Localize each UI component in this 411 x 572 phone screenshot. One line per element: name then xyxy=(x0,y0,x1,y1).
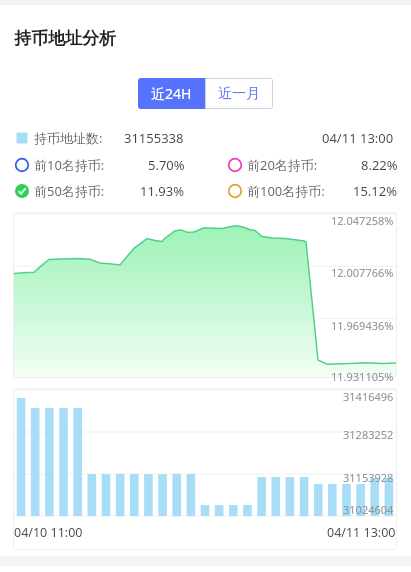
staticText: 持币地址分析 xyxy=(14,28,116,49)
staticText: 31283252 xyxy=(343,427,394,442)
button[interactable]: 前50名持币: xyxy=(14,182,185,199)
staticText: 04/10 11:00 xyxy=(14,524,83,541)
staticText: 04/11 13:00 xyxy=(322,129,394,146)
staticText: 5.70% xyxy=(148,156,185,173)
staticText: 前20名持币: xyxy=(247,156,318,173)
staticText: 12.007766% xyxy=(331,265,394,280)
staticText: 持币地址数: xyxy=(34,129,103,146)
button[interactable]: 前100名持币: xyxy=(227,182,398,199)
staticText: 31153928 xyxy=(343,470,394,485)
button[interactable]: 前10名持币: xyxy=(14,156,185,173)
staticText: 12.047258% xyxy=(331,213,394,228)
staticText: 近24H xyxy=(151,84,192,103)
staticText: 8.22% xyxy=(361,156,398,173)
staticText: 11.93% xyxy=(140,182,185,199)
staticText: 11.931105% xyxy=(331,369,394,384)
staticText: 31155338 xyxy=(124,129,184,146)
staticText: 前100名持币: xyxy=(247,182,325,199)
button[interactable]: 持币地址数: xyxy=(14,129,184,146)
staticText: 04/11 13:00 xyxy=(327,524,396,541)
staticText: 前10名持币: xyxy=(34,156,105,173)
staticText: 近一月 xyxy=(218,85,260,103)
button[interactable]: 前20名持币: xyxy=(227,156,398,173)
button[interactable]: 近24H xyxy=(138,78,205,109)
staticText: 前50名持币: xyxy=(34,182,105,199)
staticText: 15.12% xyxy=(353,182,398,199)
staticText: 11.969436% xyxy=(331,318,394,333)
button[interactable]: 近一月 xyxy=(205,78,273,109)
staticText: 31416496 xyxy=(343,389,394,404)
staticText: 31024604 xyxy=(343,502,394,517)
